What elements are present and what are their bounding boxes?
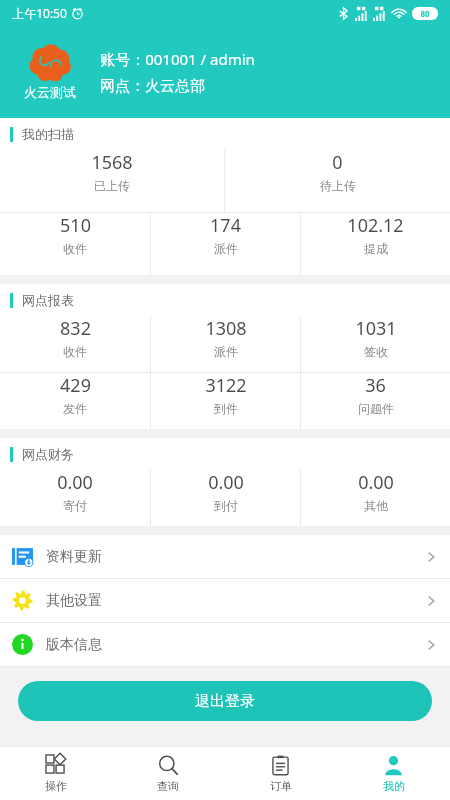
button[interactable]: 0.00 — [0, 470, 150, 513]
staticText: 3122 — [205, 373, 247, 398]
staticText: 待上传 — [320, 178, 356, 193]
staticText: 我的扫描 — [22, 126, 74, 142]
staticText: 其他设置 — [46, 592, 102, 610]
button[interactable]: 操作 — [0, 747, 112, 800]
button[interactable]: 其他设置 — [0, 579, 450, 622]
staticText: 0.00 — [57, 470, 93, 495]
staticText: 账号：001001 / admin — [100, 49, 255, 69]
staticText: 发件 — [63, 401, 87, 416]
staticText: 操作 — [45, 779, 67, 793]
staticText: 832 — [60, 316, 91, 341]
button[interactable]: 36 — [301, 373, 450, 416]
staticText: 问题件 — [358, 401, 394, 416]
staticText: 1031 — [355, 316, 397, 341]
staticText: 寄付 — [63, 498, 87, 513]
button[interactable]: 0.00 — [301, 470, 450, 513]
button[interactable]: 1031 — [301, 316, 450, 359]
button[interactable]: 102.12 — [301, 213, 450, 256]
button[interactable]: 3122 — [151, 373, 300, 416]
staticText: 查询 — [157, 779, 179, 793]
staticText: 收件 — [63, 241, 87, 256]
button[interactable]: 订单 — [224, 747, 337, 800]
button[interactable]: 1308 — [151, 316, 300, 359]
staticText: 36 — [365, 373, 386, 398]
button[interactable]: 429 — [0, 373, 150, 416]
staticText: 网点报表 — [22, 292, 74, 308]
staticText: 提成 — [364, 241, 388, 256]
button[interactable]: 0.00 — [151, 470, 300, 513]
staticText: 派件 — [214, 241, 238, 256]
staticText: 我的 — [383, 779, 405, 793]
staticText: 签收 — [364, 344, 388, 359]
button[interactable]: 退出登录 — [18, 681, 432, 721]
staticText: 到件 — [214, 401, 238, 416]
staticText: 80 — [420, 8, 430, 19]
button[interactable]: 0 — [225, 150, 450, 193]
button[interactable]: 版本信息 — [0, 623, 450, 666]
staticText: 网点：火云总部 — [100, 77, 205, 96]
staticText: 资料更新 — [46, 548, 102, 566]
staticText: 退出登录 — [195, 692, 255, 711]
staticText: 429 — [60, 373, 91, 398]
button[interactable]: 我的 — [337, 747, 450, 800]
staticText: 火云测试 — [24, 84, 76, 100]
staticText: 174 — [210, 213, 241, 238]
staticText: 上午10:50 — [12, 5, 67, 21]
button[interactable]: 174 — [151, 213, 300, 256]
staticText: 0 — [332, 150, 343, 175]
button[interactable]: 资料更新 — [0, 535, 450, 578]
staticText: 1308 — [205, 316, 247, 341]
button[interactable]: 查询 — [112, 747, 224, 800]
staticText: 版本信息 — [46, 636, 102, 654]
staticText: 其他 — [364, 498, 388, 513]
button[interactable]: 832 — [0, 316, 150, 359]
staticText: 到付 — [214, 498, 238, 513]
staticText: 102.12 — [347, 213, 404, 238]
staticText: 0.00 — [358, 470, 394, 495]
button[interactable]: 1568 — [0, 150, 224, 193]
staticText: 510 — [60, 213, 91, 238]
staticText: 0.00 — [208, 470, 244, 495]
staticText: 网点财务 — [22, 446, 74, 462]
staticText: 1568 — [91, 150, 133, 175]
staticText: 订单 — [270, 779, 292, 793]
staticText: 收件 — [63, 344, 87, 359]
staticText: 派件 — [214, 344, 238, 359]
staticText: 已上传 — [94, 178, 130, 193]
button[interactable]: 510 — [0, 213, 150, 256]
